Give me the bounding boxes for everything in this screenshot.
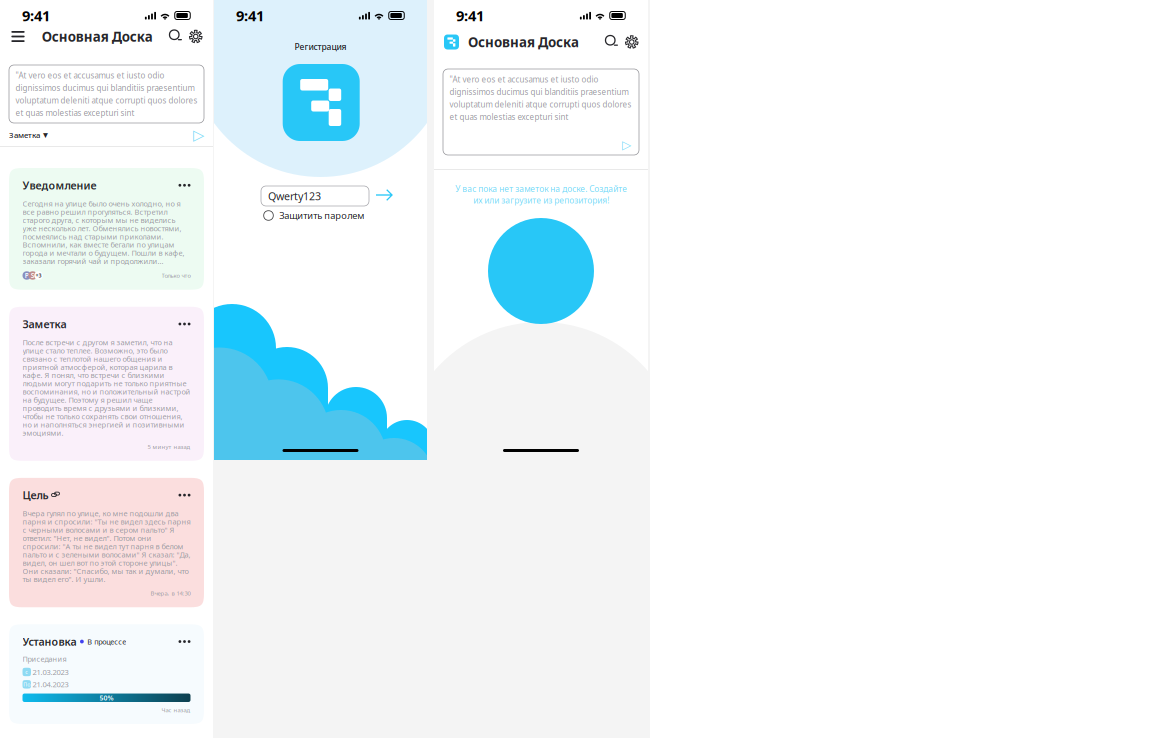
button[interactable]: Settings [189,30,202,43]
staticText: +3 [35,272,41,279]
button[interactable]: Board icon [444,34,459,49]
staticText: Регистрация [294,41,346,53]
staticText: 9:41 [22,5,50,25]
button[interactable]: More options [178,184,190,187]
staticText: Цель [22,488,48,502]
staticText: Основная Доска [468,33,579,51]
button[interactable]: Search [169,30,182,43]
button[interactable]: Заметка [9,130,48,140]
staticText: 21.04.2023 [32,679,68,690]
staticText: ▷ [622,138,631,152]
staticText: Заметка [9,130,40,140]
staticText: Только что [161,271,190,279]
button[interactable]: More options [178,323,190,325]
staticText: ▼ [43,131,48,139]
button[interactable]: Send [193,127,204,143]
staticText: Заметка [22,317,66,331]
staticText: 50% [99,693,113,702]
staticText: 9:41 [236,5,264,25]
staticText: Вчера, в 14:30 [150,589,190,597]
button[interactable]: Защитить паролем [264,210,364,221]
staticText: Час назад [161,706,190,714]
staticText: Приседания [22,654,66,664]
staticText: 9:41 [456,5,484,25]
staticText: Сегодня на улице было очень холодно, но … [22,198,184,266]
button[interactable]: Search [605,35,618,48]
staticText: После встречи с другом я заметил, что на… [22,337,190,438]
staticText: S [31,271,35,280]
staticText: По [23,681,30,688]
button[interactable]: Continue [376,189,392,200]
staticText: 21.03.2023 [32,667,68,677]
staticText: "At vero eos et accusamus et iusto odio … [15,70,197,118]
staticText: ▷ [193,127,204,143]
button[interactable]: More options [178,494,190,496]
staticText: Уведомление [22,178,96,192]
staticText: Защитить паролем [279,209,364,222]
staticText: 5 минут назад [147,443,190,451]
button[interactable]: Menu [11,29,25,43]
staticText: Вчера гулял по улице, ко мне подошли два… [22,508,190,584]
staticText: с [25,668,28,676]
staticText: Qwerty123 [268,189,321,203]
staticText: В процессе [87,637,126,647]
staticText: "At vero eos et accusamus et iusto odio … [449,74,631,122]
button[interactable]: Settings [625,36,638,48]
staticText: Основная Доска [42,27,153,46]
staticText: Установка [22,634,76,649]
button[interactable]: More options [178,640,190,643]
staticText: У вас пока нет заметок на доске. Создайт… [455,183,627,206]
staticText: P [25,271,29,280]
